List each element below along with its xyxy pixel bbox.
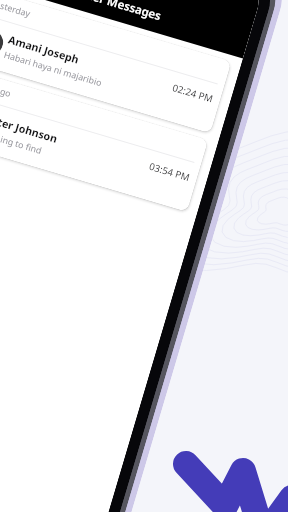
button[interactable]: Yesterday	[0, 0, 232, 133]
staticText: Yesterday	[0, 0, 32, 20]
staticText: 2 days ago	[0, 76, 13, 100]
staticText: Other Messages	[0, 0, 250, 50]
staticText: Amani Joseph	[6, 33, 81, 68]
staticText: 03:54 PM	[148, 160, 192, 184]
button[interactable]: Other Messages	[0, 0, 266, 58]
button[interactable]: 2 days ago	[0, 68, 208, 212]
staticText: Peter Johnson	[0, 111, 59, 147]
staticText: Habari haya ni majaribio	[2, 49, 104, 89]
staticText: 02:24 PM	[171, 81, 215, 105]
staticText: Nothing to find	[0, 127, 43, 157]
